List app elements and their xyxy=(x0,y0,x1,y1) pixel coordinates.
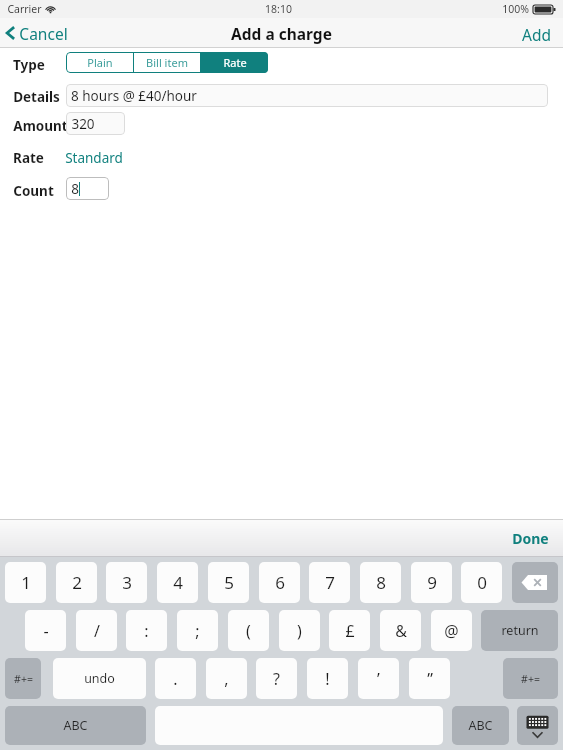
staticText: Add a charge xyxy=(231,23,332,44)
staticText: 320 xyxy=(71,115,95,133)
staticText: ) xyxy=(297,620,302,642)
button[interactable]: ” xyxy=(409,658,450,699)
button[interactable]: Done xyxy=(498,521,563,556)
button[interactable]: ; xyxy=(177,610,218,651)
staticText: - xyxy=(43,620,49,642)
staticText: ABC xyxy=(468,717,493,734)
staticText: 100% xyxy=(502,2,529,16)
staticText: & xyxy=(395,620,407,642)
button[interactable]: 3 xyxy=(106,562,147,603)
button[interactable]: ’ xyxy=(358,658,399,699)
button[interactable]: Bill item xyxy=(134,52,200,73)
button[interactable]: Add xyxy=(510,18,563,48)
staticText: Rate xyxy=(223,55,247,70)
button[interactable]: 9 xyxy=(411,562,452,603)
staticText: Details xyxy=(13,88,60,106)
staticText: ? xyxy=(273,668,280,690)
button[interactable]: ABC xyxy=(5,706,146,745)
button[interactable]: Rate xyxy=(201,52,268,73)
staticText: ! xyxy=(325,668,330,690)
button[interactable]: , xyxy=(206,658,247,699)
button[interactable]: 8 hours @ £40/hour xyxy=(66,84,548,107)
staticText: , xyxy=(224,668,229,690)
button[interactable]: undo xyxy=(53,658,146,699)
staticText: £ xyxy=(345,620,355,642)
staticText: #+= xyxy=(521,672,540,686)
button[interactable]: / xyxy=(76,610,117,651)
staticText: Carrier xyxy=(7,2,42,16)
staticText: Type xyxy=(13,56,45,74)
staticText: 6 xyxy=(275,571,285,594)
staticText: 18:10 xyxy=(265,2,292,16)
staticText: 4 xyxy=(173,571,183,594)
button[interactable]: ! xyxy=(307,658,348,699)
button[interactable]: 4 xyxy=(157,562,198,603)
staticText: 0 xyxy=(477,571,487,594)
button[interactable]: 8 xyxy=(360,562,401,603)
staticText: Amount xyxy=(13,117,68,135)
button[interactable]: 6 xyxy=(259,562,300,603)
button[interactable]: ) xyxy=(279,610,320,651)
staticText: Rate xyxy=(13,149,44,167)
staticText: 1 xyxy=(21,571,31,594)
button[interactable]: ABC xyxy=(452,706,509,745)
button[interactable]: . xyxy=(155,658,196,699)
button[interactable]: #+= xyxy=(503,658,558,699)
button[interactable]: £ xyxy=(329,610,370,651)
staticText: #+= xyxy=(14,672,33,686)
staticText: Cancel xyxy=(19,23,68,43)
button[interactable]: & xyxy=(380,610,421,651)
button[interactable]: Backspace xyxy=(512,562,558,603)
button[interactable]: 8 xyxy=(66,177,109,200)
staticText: 8 xyxy=(71,180,79,198)
staticText: 9 xyxy=(427,571,437,594)
staticText: Bill item xyxy=(146,55,188,70)
button[interactable]: ? xyxy=(256,658,297,699)
staticText: 7 xyxy=(325,571,335,594)
staticText: ( xyxy=(246,620,251,642)
staticText: ’ xyxy=(377,668,380,690)
button[interactable]: 1 xyxy=(5,562,46,603)
staticText: ; xyxy=(195,620,200,642)
button[interactable]: #+= xyxy=(5,658,41,699)
staticText: 3 xyxy=(122,571,132,594)
staticText: ” xyxy=(427,668,433,690)
staticText: undo xyxy=(84,670,115,687)
staticText: 2 xyxy=(72,571,82,594)
staticText: ABC xyxy=(63,717,88,734)
button[interactable]: Hide keyboard xyxy=(517,706,558,745)
button[interactable]: return xyxy=(481,610,558,651)
button[interactable]: - xyxy=(25,610,66,651)
button[interactable]: ( xyxy=(228,610,269,651)
staticText: Count xyxy=(13,182,54,200)
button[interactable]: Plain xyxy=(66,52,133,73)
staticText: @ xyxy=(444,620,459,642)
staticText: Standard xyxy=(65,149,123,167)
staticText: Done xyxy=(512,529,549,548)
staticText: / xyxy=(94,620,100,642)
button[interactable]: 2 xyxy=(56,562,97,603)
button[interactable]: 320 xyxy=(66,112,125,135)
staticText: 5 xyxy=(224,571,234,594)
button[interactable]: 5 xyxy=(208,562,249,603)
staticText: 8 xyxy=(376,571,386,594)
button[interactable]: Cancel xyxy=(0,18,80,48)
button[interactable]: Standard xyxy=(62,145,126,171)
staticText: 8 hours @ £40/hour xyxy=(71,87,197,105)
button[interactable]: 7 xyxy=(309,562,350,603)
button[interactable]: : xyxy=(126,610,167,651)
button[interactable]: @ xyxy=(431,610,472,651)
staticText: Plain xyxy=(87,55,113,70)
staticText: Add xyxy=(522,24,551,42)
staticText: return xyxy=(501,622,539,639)
button[interactable]: 0 xyxy=(461,562,502,603)
staticText: : xyxy=(144,620,149,642)
staticText: . xyxy=(173,668,178,690)
